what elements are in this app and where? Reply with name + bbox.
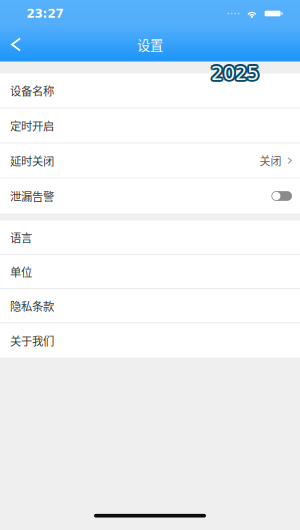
staticText: 2025: [210, 62, 258, 84]
staticText: 2025: [211, 63, 259, 85]
button[interactable]: 延时关闭: [0, 143, 300, 178]
staticText: 关于我们: [10, 332, 54, 349]
staticText: 2025: [213, 62, 261, 84]
staticText: 单位: [10, 263, 32, 280]
staticText: 2025: [210, 63, 258, 86]
staticText: 关闭: [259, 153, 281, 168]
staticText: 隐私条款: [10, 298, 54, 314]
button[interactable]: 隐私条款: [0, 289, 300, 323]
staticText: 设备名称: [10, 82, 54, 99]
staticText: 2025: [212, 62, 260, 84]
staticText: 2025: [212, 63, 260, 86]
staticText: 2025: [211, 61, 259, 83]
staticText: 2025: [210, 61, 258, 83]
button[interactable]: 关于我们: [0, 323, 300, 358]
button[interactable]: 单位: [0, 255, 300, 289]
staticText: 设置: [137, 35, 163, 54]
staticText: 2025: [211, 64, 259, 86]
button[interactable]: 语言: [0, 220, 300, 255]
staticText: 语言: [10, 229, 32, 245]
button[interactable]: 定时开启: [0, 108, 300, 143]
staticText: 定时开启: [10, 117, 54, 134]
staticText: 泄漏告警: [10, 188, 54, 204]
button[interactable]: 设备名称: [0, 73, 300, 108]
staticText: 2025: [212, 61, 260, 83]
staticText: 23:27: [26, 6, 63, 20]
staticText: 延时关闭: [10, 152, 54, 169]
button[interactable]: 泄漏告警: [0, 178, 300, 213]
button[interactable]: Back: [0, 29, 27, 59]
staticText: 2025: [211, 60, 259, 83]
staticText: 2025: [209, 62, 257, 84]
staticText: 2025: [211, 62, 259, 84]
